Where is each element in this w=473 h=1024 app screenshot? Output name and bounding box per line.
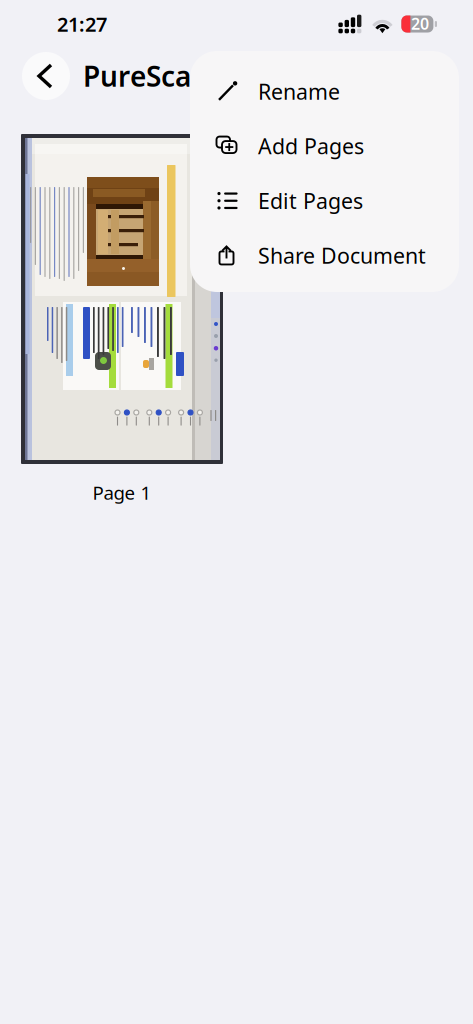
button[interactable]: Share Document xyxy=(190,228,459,283)
staticText: Page 1 xyxy=(92,480,151,505)
staticText: Share Document xyxy=(258,241,426,270)
button[interactable]: Add Pages xyxy=(190,119,459,173)
staticText: PureScan xyxy=(83,57,209,95)
staticText: Add Pages xyxy=(258,132,364,160)
staticText: 20 xyxy=(411,13,429,34)
button[interactable]: Rename xyxy=(190,64,459,119)
button[interactable]: Back xyxy=(22,52,70,100)
staticText: Rename xyxy=(258,77,340,105)
staticText: 21:27 xyxy=(57,11,107,37)
button[interactable]: Edit Pages xyxy=(190,173,459,228)
staticText: Edit Pages xyxy=(258,187,363,215)
